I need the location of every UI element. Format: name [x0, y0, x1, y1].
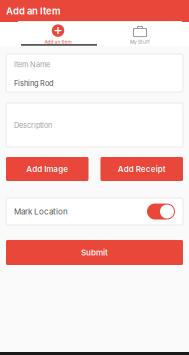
staticText: Add an Item: [44, 39, 71, 45]
button[interactable]: Add Image: [6, 157, 88, 181]
staticText: Mark Location: [14, 207, 68, 216]
staticText: Fishing Rod: [14, 79, 53, 88]
button[interactable]: Submit: [6, 240, 183, 265]
staticText: Submit: [81, 248, 108, 257]
button[interactable]: My Stuff: [98, 22, 182, 44]
staticText: Description: [14, 121, 52, 130]
button[interactable]: Add an Item: [18, 22, 98, 44]
staticText: Add an Item: [6, 5, 61, 17]
button[interactable]: Mark Location: [147, 203, 175, 219]
staticText: Item Name: [14, 60, 50, 69]
staticText: Add Image: [26, 164, 68, 174]
button[interactable]: Add Receipt: [100, 157, 183, 181]
staticText: Add Receipt: [118, 164, 166, 174]
staticText: My Stuff: [130, 39, 150, 45]
